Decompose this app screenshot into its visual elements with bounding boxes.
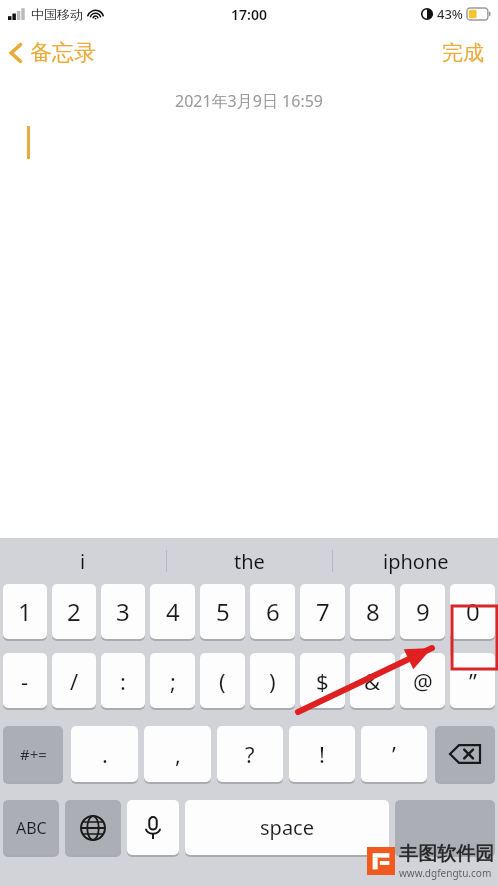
staticText: ’ bbox=[392, 739, 396, 769]
staticText: ” bbox=[469, 666, 477, 696]
staticText: 6 bbox=[266, 595, 280, 628]
button[interactable]: 完成 bbox=[442, 40, 484, 66]
staticText: 3 bbox=[116, 595, 130, 628]
button[interactable]: . bbox=[71, 726, 138, 782]
staticText: www.dgfengtu.com bbox=[399, 866, 492, 880]
staticText: 丰图软件园 bbox=[399, 842, 494, 866]
staticText: 5 bbox=[216, 595, 230, 628]
staticText: 1 bbox=[18, 595, 32, 628]
staticText: ! bbox=[319, 739, 325, 769]
staticText: 7 bbox=[316, 595, 330, 628]
button[interactable]: ! bbox=[289, 726, 355, 782]
button[interactable]: the bbox=[167, 538, 332, 584]
button[interactable]: space bbox=[185, 800, 389, 855]
button[interactable]: 8 bbox=[350, 584, 395, 639]
button[interactable]: - bbox=[3, 653, 47, 708]
button[interactable]: iphone bbox=[333, 538, 498, 584]
button[interactable]: Change keyboard bbox=[65, 800, 121, 855]
button[interactable]: ( bbox=[200, 653, 245, 708]
button[interactable]: $ bbox=[300, 653, 345, 708]
button[interactable]: 0 bbox=[450, 584, 495, 639]
staticText: 43% bbox=[437, 5, 463, 23]
button[interactable]: ” bbox=[450, 653, 495, 708]
staticText: - bbox=[21, 666, 29, 696]
staticText: 备忘录 bbox=[30, 39, 96, 67]
button[interactable]: , bbox=[144, 726, 211, 782]
button[interactable]: ’ bbox=[361, 726, 427, 782]
button[interactable]: Dictation bbox=[127, 800, 179, 855]
staticText: . bbox=[102, 739, 108, 769]
button[interactable]: 9 bbox=[400, 584, 445, 639]
button[interactable]: 6 bbox=[250, 584, 295, 639]
staticText: the bbox=[234, 548, 265, 575]
staticText: $ bbox=[316, 666, 329, 696]
button[interactable]: ? bbox=[217, 726, 283, 782]
button[interactable]: i bbox=[0, 538, 166, 584]
button[interactable]: 3 bbox=[101, 584, 145, 639]
button[interactable]: 备忘录 bbox=[8, 39, 96, 67]
button[interactable]: 7 bbox=[300, 584, 345, 639]
button[interactable]: ; bbox=[150, 653, 195, 708]
staticText: 0 bbox=[466, 595, 480, 628]
button[interactable]: #+= bbox=[3, 726, 63, 782]
staticText: iphone bbox=[383, 548, 449, 575]
button[interactable]: 4 bbox=[150, 584, 195, 639]
staticText: i bbox=[80, 548, 86, 575]
button[interactable]: 1 bbox=[3, 584, 47, 639]
staticText: ) bbox=[269, 666, 276, 696]
staticText: ? bbox=[245, 739, 255, 769]
button[interactable]: ABC bbox=[3, 800, 59, 855]
staticText: 17:00 bbox=[231, 5, 267, 24]
staticText: & bbox=[364, 666, 381, 696]
button[interactable]: 2 bbox=[52, 584, 96, 639]
staticText: space bbox=[260, 814, 314, 841]
button[interactable]: @ bbox=[400, 653, 445, 708]
button[interactable]: ) bbox=[250, 653, 295, 708]
button[interactable]: : bbox=[101, 653, 145, 708]
staticText: : bbox=[120, 666, 126, 696]
staticText: , bbox=[175, 739, 181, 769]
staticText: 2 bbox=[67, 595, 81, 628]
button[interactable]: 5 bbox=[200, 584, 245, 639]
staticText: 4 bbox=[166, 595, 180, 628]
button[interactable]: & bbox=[350, 653, 395, 708]
button[interactable]: Backspace bbox=[435, 726, 495, 782]
staticText: 完成 bbox=[442, 40, 484, 66]
staticText: 2021年3月9日 16:59 bbox=[175, 90, 323, 112]
button[interactable]: / bbox=[52, 653, 96, 708]
staticText: #+= bbox=[20, 744, 47, 764]
button[interactable] bbox=[395, 800, 495, 855]
staticText: 中国移动 bbox=[31, 6, 83, 22]
staticText: / bbox=[70, 666, 79, 696]
staticText: ( bbox=[219, 666, 226, 696]
staticText: @ bbox=[413, 666, 433, 696]
staticText: ABC bbox=[16, 817, 47, 839]
staticText: 8 bbox=[366, 595, 380, 628]
staticText: 9 bbox=[416, 595, 430, 628]
staticText: ; bbox=[170, 666, 176, 696]
